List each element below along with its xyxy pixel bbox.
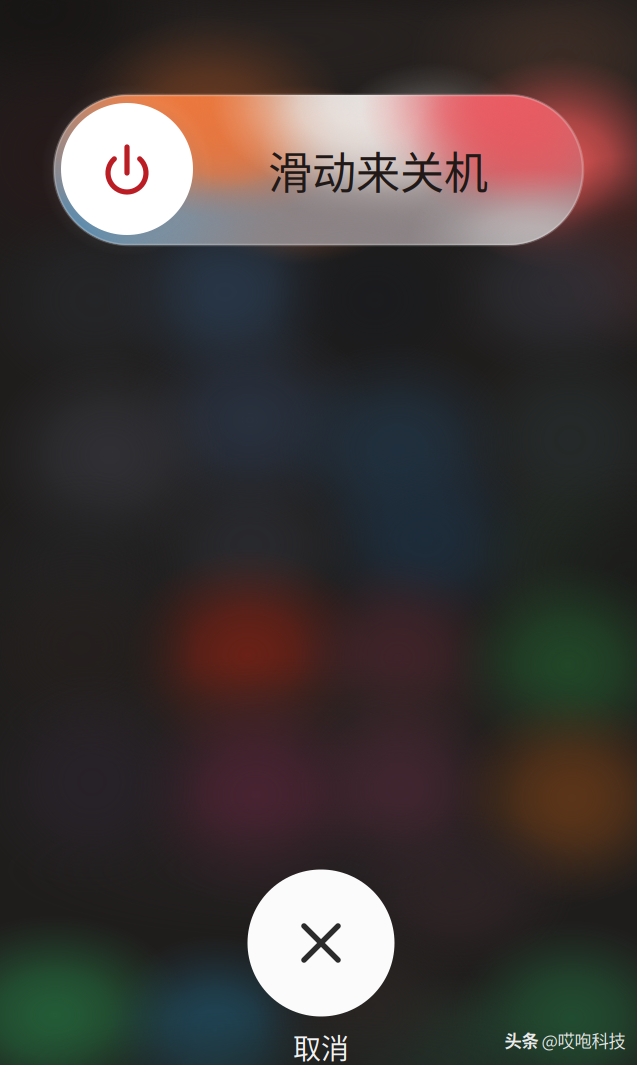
staticText: 滑动来关机 — [268, 138, 488, 202]
button[interactable]: 滑动来关机 — [54, 95, 583, 245]
staticText: @哎咆科技 — [541, 1027, 625, 1053]
button[interactable]: 取消 — [293, 1027, 349, 1065]
staticText: 取消 — [293, 1027, 349, 1065]
button[interactable]: Cancel — [247, 869, 394, 1016]
staticText: 头条 — [504, 1027, 538, 1053]
